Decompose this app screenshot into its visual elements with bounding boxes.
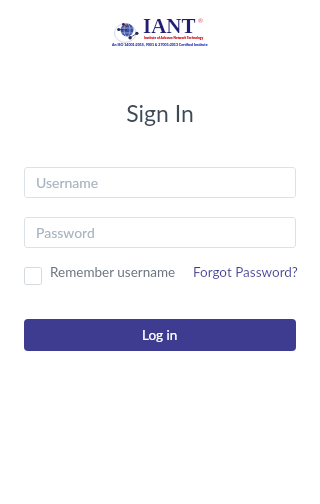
staticText: IANT [143,14,196,37]
button[interactable]: Log in [24,319,296,351]
staticText: An ISO 14001:2015, 9001 & 27001:2013 Cer… [112,42,208,46]
button[interactable]: Password [24,217,296,248]
button[interactable] [24,267,42,285]
button[interactable]: Forgot Password? [193,264,298,280]
button[interactable]: Username [24,167,296,198]
button[interactable]: Remember username [50,264,176,280]
staticText: An ISO 14001:2015, 9001 & 27001:2013 Cer… [112,42,208,46]
staticText: Sign In [0,99,320,127]
staticText: Password [36,224,95,241]
staticText: ® [198,17,203,24]
staticText: Institute of Advance Network Technology [144,36,204,40]
staticText: Institute of Advance Network Technology [144,36,204,40]
staticText: Log in [142,327,178,343]
staticText: Username [36,174,99,191]
